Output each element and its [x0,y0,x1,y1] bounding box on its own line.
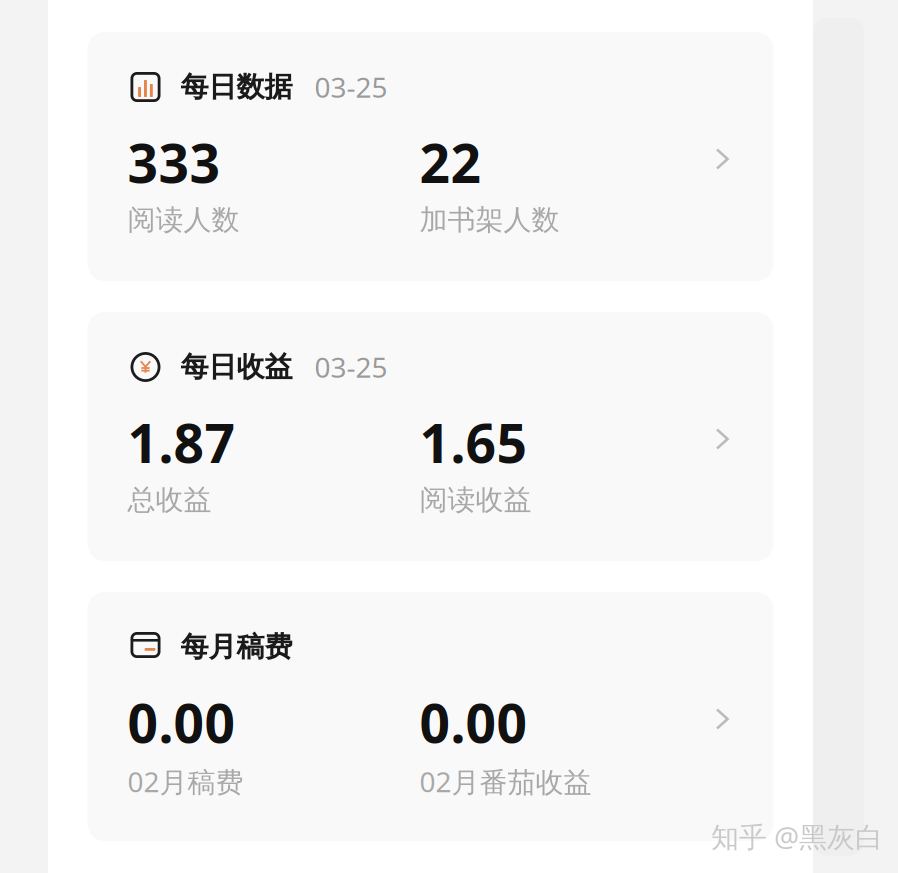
staticText: 每日数据 [180,70,292,104]
staticText: 每月稿费 [180,630,292,664]
staticText: 每日收益 [180,350,292,384]
staticText: 阅读人数 [127,203,239,237]
staticText: 总收益 [127,483,211,517]
button[interactable]: 每月稿费 [87,592,773,841]
staticText: 03-25 [314,348,387,386]
staticText: 0.00 [419,687,527,758]
staticText: 1.65 [419,407,527,478]
staticText: 02月番茄收益 [419,763,591,800]
staticText: 知乎 @黑灰白 [711,818,883,855]
staticText: 22 [419,127,481,198]
staticText: 1.87 [127,407,235,478]
staticText: 02月稿费 [127,763,243,800]
staticText: 333 [127,127,220,198]
staticText: 0.00 [127,687,235,758]
button[interactable]: 每日收益 [87,312,773,561]
staticText: 加书架人数 [419,203,559,237]
staticText: 阅读收益 [419,483,531,517]
button[interactable]: 每日数据 [87,32,773,281]
staticText: 03-25 [314,68,387,106]
